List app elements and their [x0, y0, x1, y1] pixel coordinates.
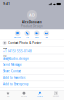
- button[interactable]: video: [32, 30, 41, 38]
- button[interactable]: Contacts: [32, 92, 48, 97]
- button[interactable]: Add to Emergency: [0, 81, 64, 87]
- staticText: call: [26, 36, 28, 38]
- button[interactable]: mail: [42, 30, 51, 38]
- staticText: Contacts: [37, 95, 43, 97]
- staticText: Keypad: [53, 95, 59, 97]
- staticText: 9:41: [3, 2, 10, 6]
- staticText: Send Message: [3, 63, 22, 66]
- staticText: Add to Emergency: [3, 82, 28, 86]
- staticText: +1 (415) 555-0148: [3, 49, 32, 53]
- button[interactable]: Keypad: [48, 92, 64, 97]
- button[interactable]: Contact Photo & Poster: [0, 39, 64, 46]
- button[interactable]: Send Message: [0, 62, 64, 68]
- button[interactable]: mobile: [0, 47, 64, 54]
- staticText: Alex Donovan: [22, 20, 42, 24]
- staticText: Contact Photo & Poster: [8, 41, 41, 45]
- staticText: mobile: [3, 48, 7, 49]
- button[interactable]: message: [13, 30, 22, 38]
- button[interactable]: Recents: [16, 92, 32, 97]
- staticText: alex@studio.design: [3, 57, 29, 60]
- staticText: Product Design: [21, 24, 43, 28]
- button[interactable]: Lists: [0, 92, 16, 97]
- staticText: message: [14, 36, 21, 38]
- staticText: video: [35, 36, 39, 38]
- staticText: Recents: [21, 95, 27, 97]
- staticText: Lists: [6, 95, 9, 97]
- button[interactable]: Add to Favorites: [0, 75, 64, 81]
- staticText: Add to Favorites: [3, 76, 25, 79]
- staticText: Share Contact: [3, 69, 21, 73]
- staticText: email: [3, 55, 6, 57]
- button[interactable]: email: [0, 54, 64, 61]
- staticText: AD: [29, 12, 35, 18]
- staticText: mail: [45, 36, 47, 38]
- button[interactable]: call: [23, 30, 32, 38]
- button[interactable]: Share Contact: [0, 68, 64, 74]
